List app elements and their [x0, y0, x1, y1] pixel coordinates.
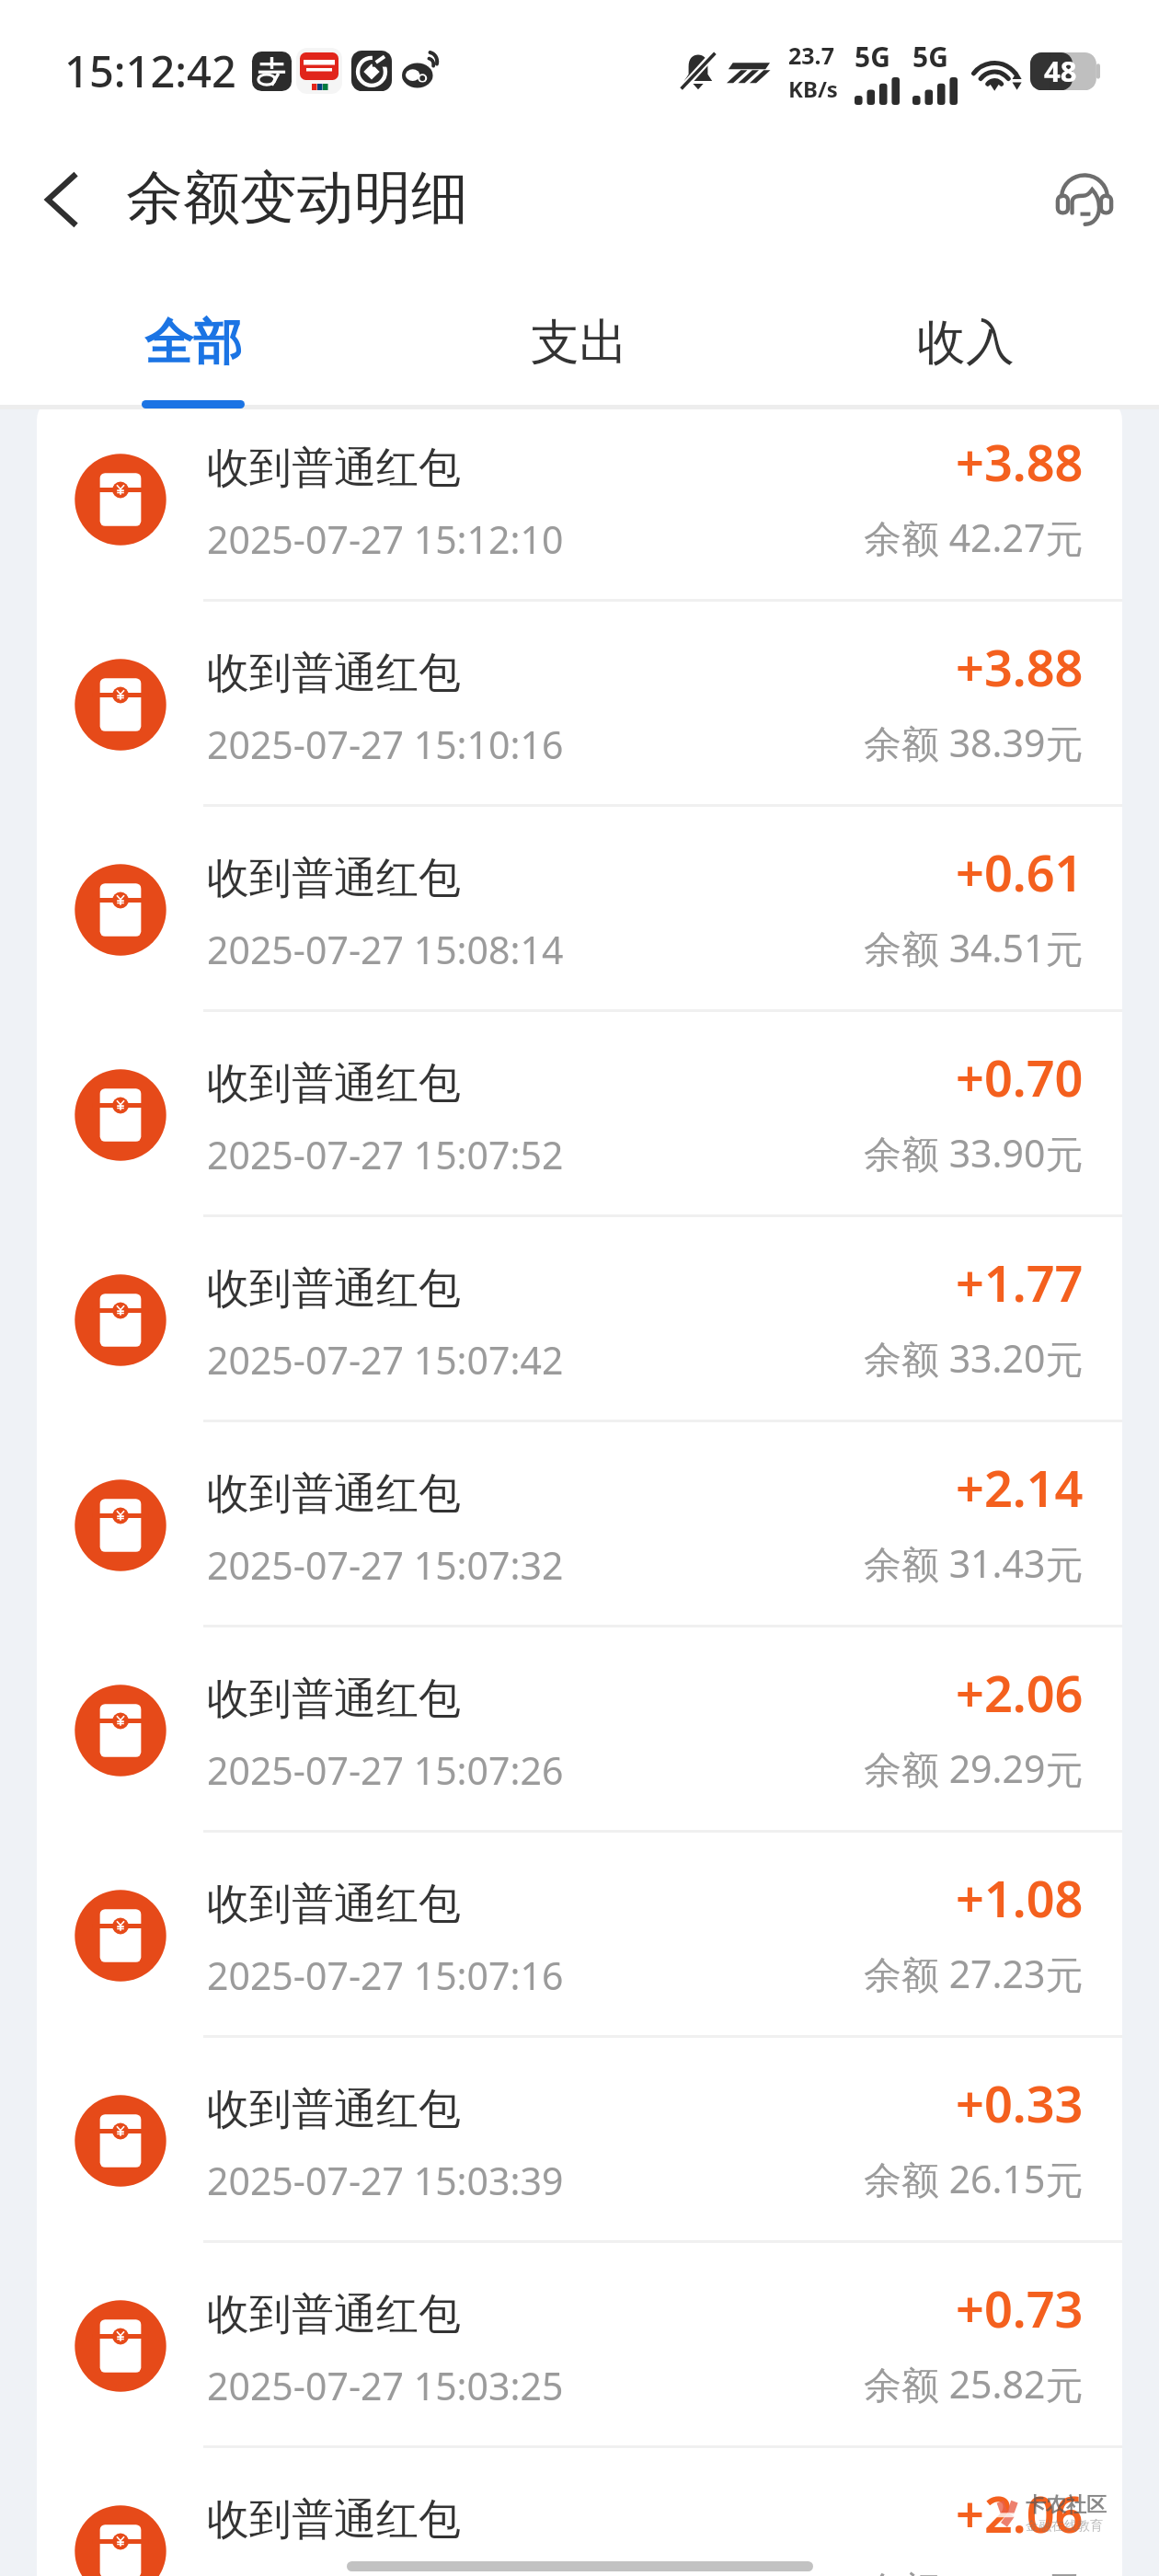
- button[interactable]: Back: [17, 155, 106, 244]
- staticText: +0.73: [956, 2274, 1084, 2342]
- button[interactable]: 收到普通红包: [37, 1833, 1122, 2038]
- staticText: 2025-07-27 15:03:25: [207, 2360, 564, 2411]
- staticText: 余额 34.51元: [864, 922, 1084, 973]
- staticText: 余额 25.82元: [864, 2358, 1084, 2409]
- staticText: 2025-07-27 15:07:16: [207, 1949, 564, 2001]
- button[interactable]: 支出: [386, 265, 773, 405]
- staticText: 2025-07-27 15:08:14: [207, 924, 564, 975]
- staticText: 支出: [531, 312, 628, 374]
- staticText: 2025-07-27 15:07:42: [207, 1334, 564, 1386]
- button[interactable]: 收到普通红包: [37, 2243, 1122, 2448]
- staticText: +2.14: [956, 1454, 1084, 1522]
- staticText: 卡农社区: [1026, 2492, 1107, 2518]
- staticText: 余额 31.43元: [864, 1537, 1084, 1589]
- button[interactable]: 收入: [773, 265, 1159, 405]
- button[interactable]: 收到普通红包: [37, 602, 1122, 807]
- staticText: 2025-07-27 15:03:19: [207, 2565, 564, 2576]
- button[interactable]: 收到普通红包: [37, 807, 1122, 1012]
- button[interactable]: 收到普通红包: [37, 2448, 1122, 2576]
- staticText: 余额 38.39元: [864, 717, 1084, 768]
- staticText: 收到普通红包: [207, 2083, 461, 2136]
- staticText: 余额 33.20元: [864, 1332, 1084, 1384]
- staticText: +0.61: [956, 838, 1084, 906]
- staticText: 2025-07-27 15:03:39: [207, 2155, 564, 2206]
- staticText: 收到普通红包: [207, 2493, 461, 2547]
- staticText: 余额 29.29元: [864, 1742, 1084, 1794]
- staticText: 收入: [917, 312, 1015, 374]
- staticText: 金融在线教育: [1026, 2518, 1103, 2535]
- staticText: 余额 26.15元: [864, 2153, 1084, 2204]
- staticText: 收到普通红包: [207, 852, 461, 905]
- staticText: 余额 27.23元: [864, 1948, 1084, 1999]
- staticText: KB/s: [788, 74, 838, 104]
- staticText: +0.33: [956, 2069, 1084, 2137]
- button[interactable]: 收到普通红包: [37, 1012, 1122, 1217]
- staticText: 余额变动明细: [126, 162, 468, 234]
- button[interactable]: 收到普通红包: [37, 2038, 1122, 2243]
- staticText: 余额 42.27元: [864, 512, 1084, 563]
- staticText: 15:12:42: [64, 41, 236, 100]
- staticText: 收到普通红包: [207, 2288, 461, 2341]
- staticText: +1.77: [956, 1248, 1084, 1317]
- button[interactable]: 收到普通红包: [37, 397, 1122, 602]
- staticText: 收到普通红包: [207, 442, 461, 495]
- staticText: 2025-07-27 15:07:52: [207, 1129, 564, 1180]
- staticText: 收到普通红包: [207, 1057, 461, 1110]
- staticText: 余额 33.90元: [864, 1127, 1084, 1179]
- button[interactable]: 收到普通红包: [37, 1422, 1122, 1627]
- staticText: 余额 25.09元: [864, 2563, 1084, 2576]
- button[interactable]: Customer service: [1040, 157, 1129, 246]
- staticText: 收到普通红包: [207, 1878, 461, 1931]
- staticText: 全部: [144, 312, 242, 374]
- staticText: +3.88: [956, 633, 1084, 701]
- staticText: 2025-07-27 15:12:10: [207, 513, 564, 565]
- staticText: +3.88: [956, 428, 1084, 496]
- staticText: 23.7: [788, 40, 834, 71]
- button[interactable]: 收到普通红包: [37, 1627, 1122, 1833]
- staticText: 5G: [855, 38, 890, 75]
- button[interactable]: 收到普通红包: [37, 1217, 1122, 1422]
- button[interactable]: 全部: [0, 265, 386, 405]
- staticText: 2025-07-27 15:07:26: [207, 1744, 564, 1796]
- staticText: 5G: [912, 38, 948, 75]
- staticText: +1.08: [956, 1864, 1084, 1932]
- staticText: 2025-07-27 15:10:16: [207, 719, 564, 770]
- staticText: 收到普通红包: [207, 647, 461, 700]
- staticText: 收到普通红包: [207, 1262, 461, 1316]
- staticText: +2.06: [956, 1659, 1084, 1727]
- staticText: 收到普通红包: [207, 1467, 461, 1521]
- staticText: +2.06: [956, 2479, 1084, 2547]
- staticText: 48: [1044, 52, 1077, 89]
- staticText: 收到普通红包: [207, 1673, 461, 1726]
- staticText: +0.70: [956, 1043, 1084, 1111]
- staticText: 2025-07-27 15:07:32: [207, 1539, 564, 1591]
